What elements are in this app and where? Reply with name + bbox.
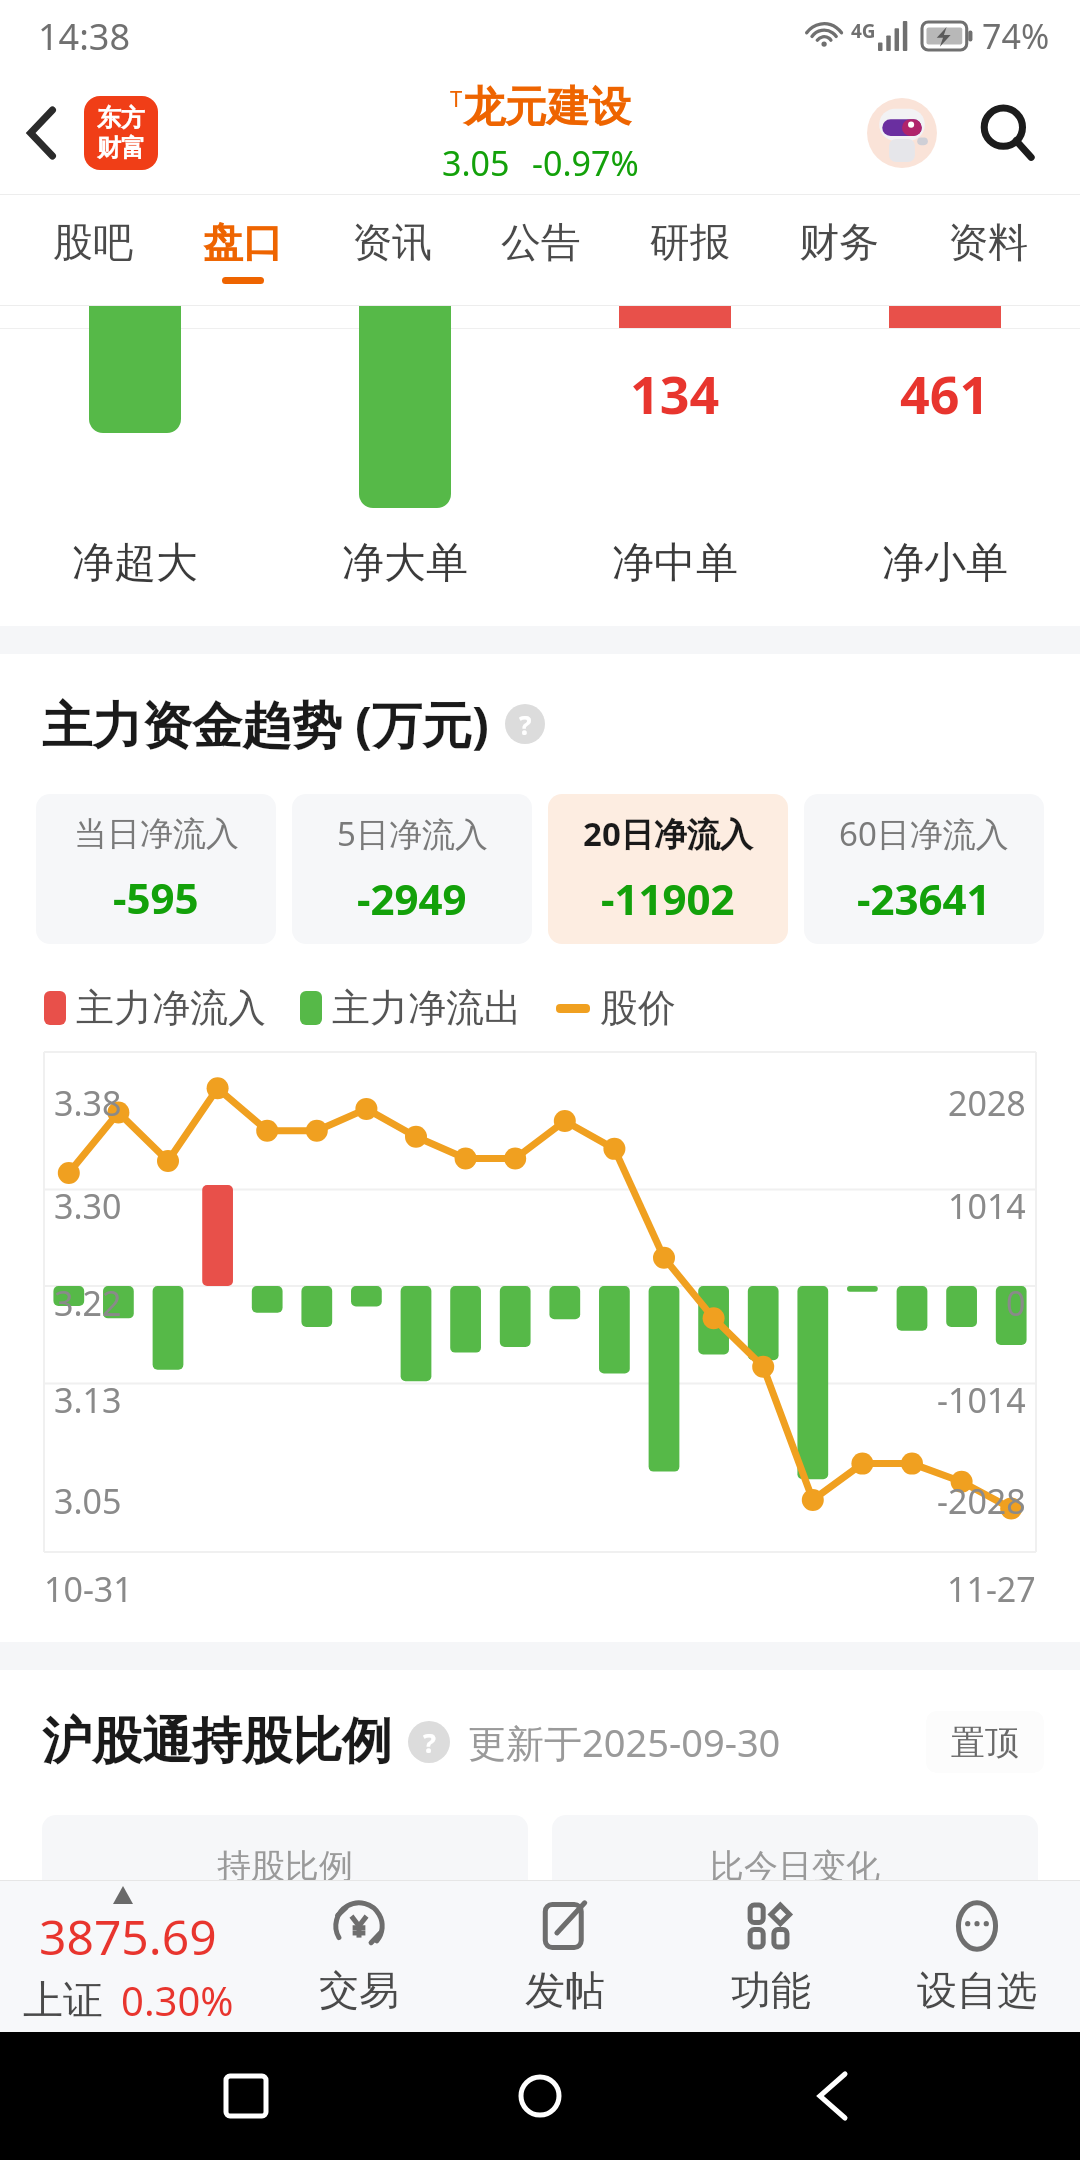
staticText: 1014	[948, 1183, 1026, 1229]
staticText: 11-27	[947, 1566, 1036, 1612]
button[interactable]: T	[442, 81, 639, 186]
button[interactable]: 20日净流入	[548, 794, 788, 944]
staticText: 主力资金趋势 (万元)	[42, 690, 489, 758]
staticText: 134	[630, 358, 720, 429]
button[interactable]: 置顶	[926, 1711, 1044, 1773]
button[interactable]: 盘口	[168, 195, 317, 305]
staticText: 20日净流入	[583, 811, 753, 856]
staticText: 14:38	[38, 12, 131, 61]
staticText: 3.05	[442, 140, 510, 186]
staticText: 发帖	[525, 1965, 605, 2015]
button[interactable]: 功能	[668, 1880, 874, 2032]
button[interactable]: Search	[962, 87, 1054, 179]
button[interactable]: Assistant	[864, 95, 940, 171]
staticText: 交易	[319, 1965, 399, 2015]
staticText: 2028	[948, 1080, 1026, 1126]
button[interactable]: Home	[492, 2048, 588, 2144]
staticText: 盘口	[203, 217, 283, 267]
staticText: -0.97%	[532, 140, 639, 186]
button[interactable]: 交易	[256, 1880, 462, 2032]
button[interactable]: 比今日变化	[552, 1815, 1038, 1975]
staticText: 股吧	[53, 217, 133, 267]
button[interactable]: 3875.69	[0, 1880, 256, 2032]
staticText: -23641	[857, 870, 991, 927]
staticText: 净超大	[72, 537, 198, 590]
button[interactable]: 当日净流入	[36, 794, 276, 944]
staticText: 5日净流入	[337, 811, 488, 856]
button[interactable]: 5日净流入	[292, 794, 532, 944]
staticText: 净小单	[882, 537, 1008, 590]
staticText: 沪股通持股比例	[42, 1710, 392, 1773]
staticText: ?	[519, 707, 532, 742]
staticText: 更新于2025-09-30	[468, 1716, 781, 1768]
staticText: -2949	[357, 870, 467, 927]
staticText: 净大单	[342, 537, 468, 590]
staticText: 公告	[501, 217, 581, 267]
button[interactable]: 研报	[615, 195, 764, 305]
staticText: 东方	[97, 103, 145, 133]
staticText: 置顶	[951, 1721, 1019, 1764]
staticText: 3.38	[54, 1080, 122, 1126]
button[interactable]: Recents	[198, 2048, 294, 2144]
staticText: 主力净流出	[332, 984, 522, 1032]
staticText: -2028	[937, 1478, 1026, 1524]
button[interactable]: Back	[0, 91, 84, 175]
staticText: 上证	[23, 1975, 103, 2025]
staticText: -11902	[601, 870, 735, 927]
staticText: T	[450, 83, 463, 113]
staticText: 主力净流入	[76, 984, 266, 1032]
staticText: 资料	[948, 217, 1028, 267]
button[interactable]: 持股比例	[42, 1815, 528, 1975]
staticText: 设自选	[917, 1965, 1037, 2015]
staticText: -1014	[937, 1377, 1026, 1423]
staticText: 461	[900, 358, 990, 429]
staticText: 0.30%	[121, 1973, 234, 2027]
button[interactable]: 财务	[764, 195, 913, 305]
button[interactable]: 资讯	[317, 195, 466, 305]
staticText: 3.05	[54, 1478, 122, 1524]
button[interactable]: 发帖	[462, 1880, 668, 2032]
staticText: 龙元建设	[463, 81, 631, 134]
button[interactable]: Back	[786, 2048, 882, 2144]
staticText: 3.22	[54, 1280, 122, 1326]
staticText: 持股比例	[217, 1845, 353, 1888]
button[interactable]: 东方财富	[84, 96, 158, 170]
staticText: -595	[113, 869, 199, 926]
staticText: 比今日变化	[710, 1845, 880, 1888]
button[interactable]: Help	[505, 704, 545, 744]
staticText: 0	[1006, 1280, 1026, 1326]
staticText: 功能	[731, 1965, 811, 2015]
button[interactable]: 公告	[466, 195, 615, 305]
staticText: 财务	[799, 217, 879, 267]
staticText: 当日净流入	[74, 813, 239, 855]
button[interactable]: 资料	[913, 195, 1062, 305]
staticText: 3875.69	[39, 1904, 217, 1969]
button[interactable]: Help	[408, 1721, 450, 1763]
staticText: 研报	[650, 217, 730, 267]
staticText: 3.30	[54, 1183, 122, 1229]
staticText: 4G	[851, 18, 876, 44]
button[interactable]: 股吧	[18, 195, 168, 305]
staticText: 资讯	[352, 217, 432, 267]
button[interactable]: 60日净流入	[804, 794, 1044, 944]
staticText: 净中单	[612, 537, 738, 590]
staticText: 74%	[982, 13, 1050, 59]
staticText: 财富	[97, 133, 145, 163]
staticText: 3.13	[54, 1377, 122, 1423]
button[interactable]: 设自选	[874, 1880, 1080, 2032]
staticText: 10-31	[44, 1566, 133, 1612]
staticText: 股价	[600, 984, 676, 1032]
staticText: 60日净流入	[839, 811, 1009, 856]
staticText: ?	[423, 1724, 436, 1761]
